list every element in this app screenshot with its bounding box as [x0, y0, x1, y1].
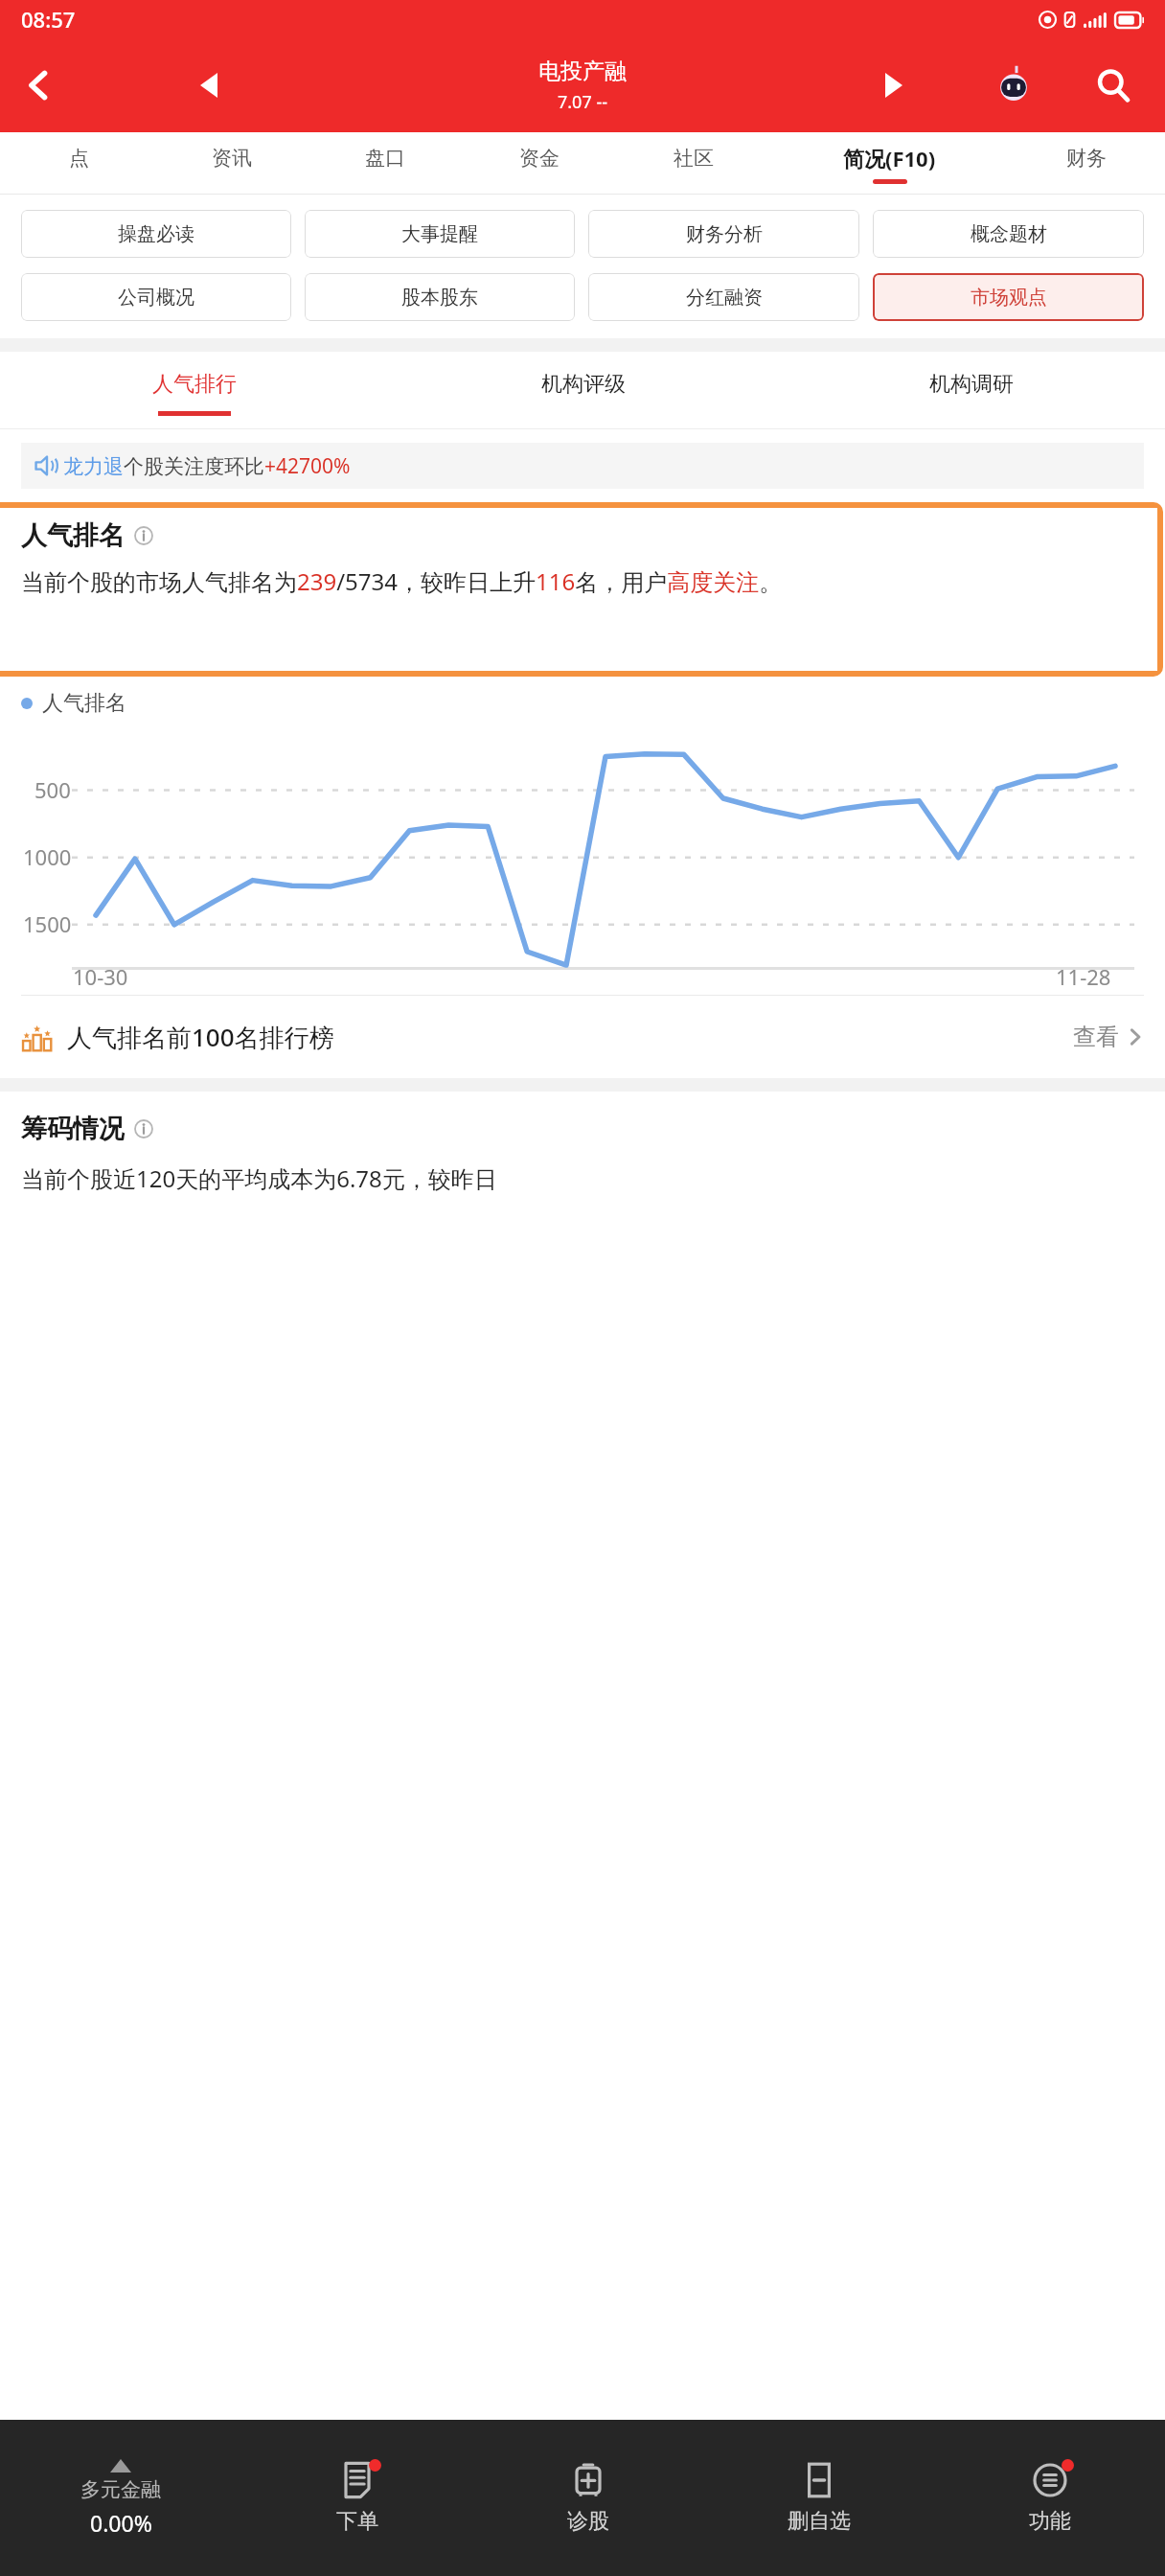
staticText: 财务分析 [686, 222, 763, 246]
staticText: 简况(F10) [843, 144, 936, 172]
staticText: 分红融资 [686, 286, 763, 310]
staticText: 资讯 [212, 146, 252, 171]
button[interactable]: Previous stock [182, 58, 236, 112]
staticText: 多元金融 [80, 2477, 161, 2502]
staticText: 0.00% [90, 2508, 152, 2538]
staticText: 人气排名前100名排行榜 [67, 1020, 334, 1054]
staticText: 功能 [1029, 2508, 1071, 2535]
staticText: 概念题材 [971, 222, 1047, 246]
button[interactable]: 功能 [934, 2420, 1165, 2576]
staticText: 机构调研 [929, 371, 1014, 398]
button[interactable]: 人气排行 [0, 352, 389, 428]
staticText: 资金 [519, 146, 560, 171]
button[interactable]: 操盘必读 [21, 210, 291, 258]
button[interactable]: Back [8, 55, 69, 116]
button[interactable]: 点 [2, 132, 155, 195]
staticText: 人气排名 [21, 519, 125, 552]
button[interactable]: 删自选 [703, 2420, 934, 2576]
staticText: 删自选 [788, 2508, 851, 2535]
button[interactable]: 机构评级 [389, 352, 777, 428]
button[interactable]: Search [1083, 55, 1144, 116]
button[interactable]: 人气排名前100名排行榜 [0, 996, 1165, 1078]
button[interactable]: 财务分析 [588, 210, 859, 258]
staticText: 人气排行 [152, 371, 237, 398]
button[interactable]: 公司概况 [21, 273, 291, 321]
button[interactable]: AI assistant [985, 57, 1042, 114]
staticText: 当前个股的市场人气排名为239/5734，较昨日上升116名，用户高度关注。 [21, 565, 783, 597]
button[interactable]: 电投产融 [538, 57, 627, 114]
button[interactable]: 多元金融 [0, 2420, 241, 2576]
staticText: 公司概况 [118, 286, 194, 310]
button[interactable]: 资讯 [155, 132, 308, 195]
button[interactable]: Next stock [867, 58, 921, 112]
button[interactable]: 资金 [462, 132, 616, 195]
button[interactable]: 机构调研 [777, 352, 1165, 428]
staticText: 11-28 [1056, 962, 1111, 991]
staticText: 08:57 [21, 5, 76, 34]
staticText: 下单 [336, 2508, 378, 2535]
staticText: 500 [34, 775, 71, 804]
staticText: 盘口 [365, 146, 405, 171]
button[interactable]: 诊股 [472, 2420, 703, 2576]
staticText: 7.07 -- [558, 90, 607, 114]
staticText: 市场观点 [971, 286, 1047, 310]
button[interactable]: 社区 [616, 132, 770, 195]
staticText: 龙力退个股关注度环比+42700% [63, 452, 351, 480]
button[interactable]: 分红融资 [588, 273, 859, 321]
staticText: 筹码情况 [21, 1113, 125, 1145]
staticText: 当前个股近120天的平均成本为6.78元，较昨日 [21, 1162, 497, 1194]
staticText: 点 [69, 146, 89, 171]
button[interactable]: 概念题材 [873, 210, 1144, 258]
button[interactable]: 市场观点 [873, 273, 1144, 321]
button[interactable]: 人气排名 [21, 519, 1140, 671]
staticText: 诊股 [567, 2508, 609, 2535]
staticText: 10-30 [73, 962, 128, 991]
staticText: 财务 [1066, 146, 1107, 171]
staticText: 股本股东 [401, 286, 478, 310]
button[interactable]: 龙力退个股关注度环比+42700% [34, 443, 1131, 489]
staticText: 1500 [23, 909, 72, 938]
button[interactable]: 财务 [1009, 132, 1163, 195]
staticText: 大事提醒 [401, 222, 478, 246]
staticText: 机构评级 [541, 371, 626, 398]
staticText: 1000 [23, 842, 72, 871]
button[interactable]: 下单 [241, 2420, 472, 2576]
button[interactable]: 简况(F10) [770, 132, 1009, 195]
button[interactable]: 大事提醒 [305, 210, 575, 258]
staticText: 查看 [1073, 1023, 1119, 1051]
staticText: 电投产融 [538, 57, 627, 85]
staticText: 社区 [674, 146, 714, 171]
button[interactable]: 盘口 [308, 132, 462, 195]
staticText: 人气排名 [42, 690, 126, 717]
staticText: 操盘必读 [118, 222, 194, 246]
button[interactable]: 股本股东 [305, 273, 575, 321]
